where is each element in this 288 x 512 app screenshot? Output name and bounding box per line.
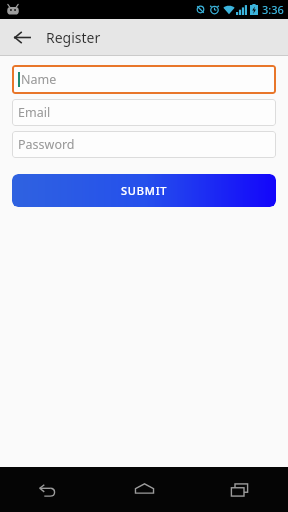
staticText: Register — [46, 28, 101, 47]
staticText: 3:36 — [262, 2, 284, 17]
button[interactable]: SUBMIT — [12, 174, 276, 207]
button[interactable]: Name — [12, 65, 276, 94]
staticText: Email — [18, 104, 51, 121]
staticText: Name — [21, 71, 57, 88]
staticText: SUBMIT — [121, 183, 168, 198]
button[interactable]: Back — [6, 21, 38, 53]
button[interactable]: Back — [0, 467, 96, 512]
button[interactable]: Recent apps — [192, 467, 288, 512]
button[interactable]: Home — [96, 467, 192, 512]
button[interactable]: Password — [12, 131, 276, 158]
button[interactable]: Email — [12, 99, 276, 126]
staticText: Password — [18, 136, 75, 153]
